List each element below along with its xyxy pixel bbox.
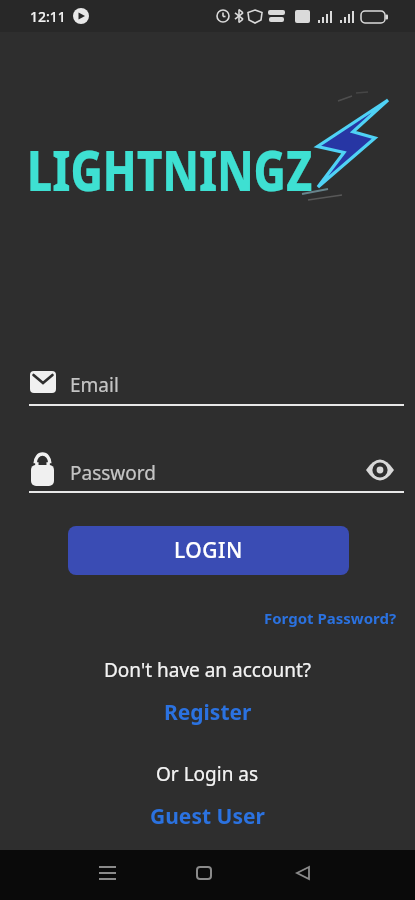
button[interactable]: Register: [164, 698, 252, 727]
staticText: Don't have an account?: [104, 657, 312, 683]
staticText: 12:11: [30, 7, 66, 26]
button[interactable]: [99, 866, 116, 880]
staticText: Email: [70, 372, 119, 398]
button[interactable]: [196, 866, 212, 880]
button[interactable]: Forgot Password?: [264, 608, 397, 628]
staticText: LIGHTNINGZ: [27, 131, 313, 207]
staticText: Or Login as: [156, 761, 259, 787]
staticText: Password: [70, 460, 156, 486]
button[interactable]: [366, 460, 394, 480]
button[interactable]: Guest User: [150, 802, 265, 831]
staticText: LOGIN: [174, 536, 243, 565]
button[interactable]: LOGIN: [68, 526, 349, 575]
button[interactable]: [296, 866, 310, 880]
